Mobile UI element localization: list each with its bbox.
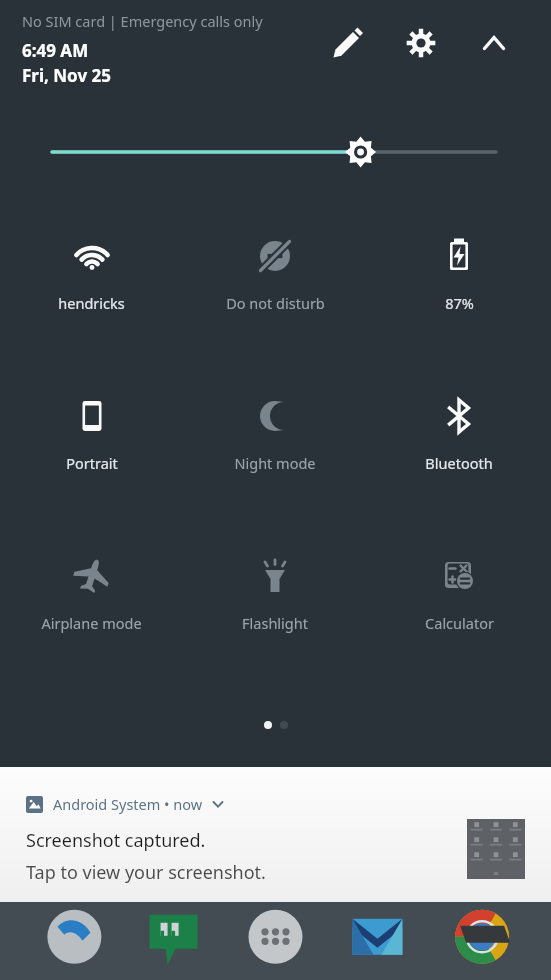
staticText: Screenshot captured. [26, 828, 206, 853]
staticText: Do not disturb [226, 293, 325, 313]
staticText: Airplane mode [41, 613, 142, 633]
button[interactable]: Flashlight [183, 540, 367, 648]
button[interactable]: Edit [326, 21, 370, 65]
staticText: Portrait [66, 453, 118, 473]
button[interactable]: Collapse [472, 21, 516, 65]
button[interactable]: Brightness [0, 128, 551, 176]
staticText: 6:49 AM [22, 39, 89, 62]
button[interactable]: Do not disturb [183, 220, 367, 328]
button[interactable]: Expand notification [210, 796, 226, 812]
button[interactable]: Night mode [183, 380, 367, 488]
button[interactable]: Airplane mode [0, 540, 183, 648]
staticText: Flashlight [242, 613, 308, 633]
button[interactable]: Settings [399, 21, 443, 65]
staticText: Calculator [425, 613, 494, 633]
staticText: Bluetooth [425, 453, 493, 473]
button[interactable]: 87% [367, 220, 551, 328]
staticText: Android System • now [53, 794, 203, 814]
button[interactable]: Bluetooth [367, 380, 551, 488]
button[interactable]: hendricks [0, 220, 183, 328]
staticText: Night mode [234, 453, 316, 473]
button[interactable]: Portrait [0, 380, 183, 488]
button[interactable]: Calculator [367, 540, 551, 648]
staticText: hendricks [58, 293, 125, 313]
staticText: Tap to view your screenshot. [26, 860, 266, 885]
staticText: 87% [445, 293, 474, 313]
staticText: Fri, Nov 25 [22, 64, 111, 87]
button[interactable]: Android System • now [0, 767, 551, 902]
staticText: No SIM card | Emergency calls only [22, 11, 263, 31]
